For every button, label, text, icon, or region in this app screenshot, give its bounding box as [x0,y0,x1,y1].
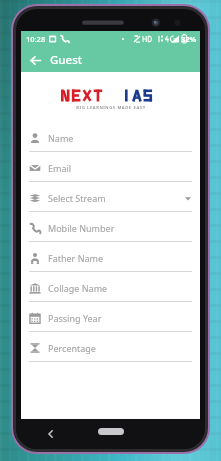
button[interactable]: Email [29,155,192,185]
staticText: Percentage [48,342,96,354]
staticText: Father Name [48,252,104,264]
staticText: Passing Year [48,312,102,324]
staticText: 10:28 [26,34,46,44]
button[interactable]: Father Name [29,245,192,275]
button[interactable]: Collage Name [29,275,192,305]
button[interactable]: Percentage [29,335,192,365]
staticText: Name [48,132,74,144]
staticText: Mobile Number [48,222,115,234]
staticText: Guest [50,52,83,68]
button[interactable]: Passing Year [29,305,192,335]
button[interactable]: Navigate up [25,50,45,70]
button[interactable]: Home [98,428,124,435]
button[interactable]: Select Stream [29,185,192,215]
button[interactable]: Back [42,425,60,443]
staticText: Collage Name [48,282,108,294]
staticText: Email [48,162,72,174]
button[interactable]: Name [29,125,192,155]
staticText: BIG LEARNINGS MADE EASY [76,105,146,111]
staticText: 32% [181,34,197,44]
staticText: Select Stream [48,192,106,204]
button[interactable]: Mobile Number [29,215,192,245]
